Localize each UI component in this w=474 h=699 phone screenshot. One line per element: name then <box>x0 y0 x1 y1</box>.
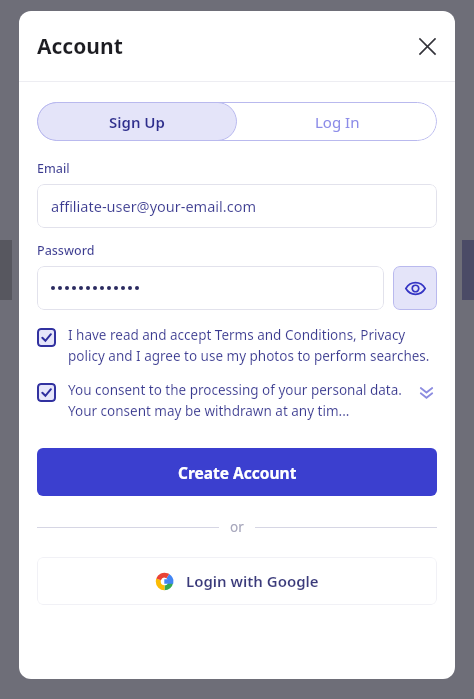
staticText: Log In <box>315 112 360 132</box>
staticText: Email <box>37 160 70 177</box>
staticText: Login with Google <box>186 571 319 591</box>
button[interactable]: You consent to the processing of your pe… <box>37 381 437 420</box>
staticText: affiliate-user@your-email.com <box>51 196 256 216</box>
button[interactable]: Show password <box>393 266 437 310</box>
button[interactable]: Expand consent text <box>415 381 437 403</box>
button[interactable]: Login with Google <box>37 557 437 605</box>
button[interactable] <box>37 266 384 310</box>
staticText: I have read and accept Terms and Conditi… <box>68 326 437 365</box>
staticText: Create Account <box>178 462 297 483</box>
staticText: Sign Up <box>109 112 165 132</box>
button[interactable]: Log In <box>237 102 437 141</box>
button[interactable]: Sign Up <box>37 102 237 141</box>
button[interactable]: affiliate-user@your-email.com <box>37 184 437 228</box>
button[interactable]: Create Account <box>37 448 437 496</box>
staticText: Account <box>37 32 123 61</box>
staticText: You consent to the processing of your pe… <box>68 381 415 420</box>
button[interactable]: I have read and accept Terms and Conditi… <box>37 326 437 365</box>
staticText: or <box>230 518 244 536</box>
button[interactable]: Close <box>407 26 447 66</box>
staticText: Password <box>37 242 95 259</box>
